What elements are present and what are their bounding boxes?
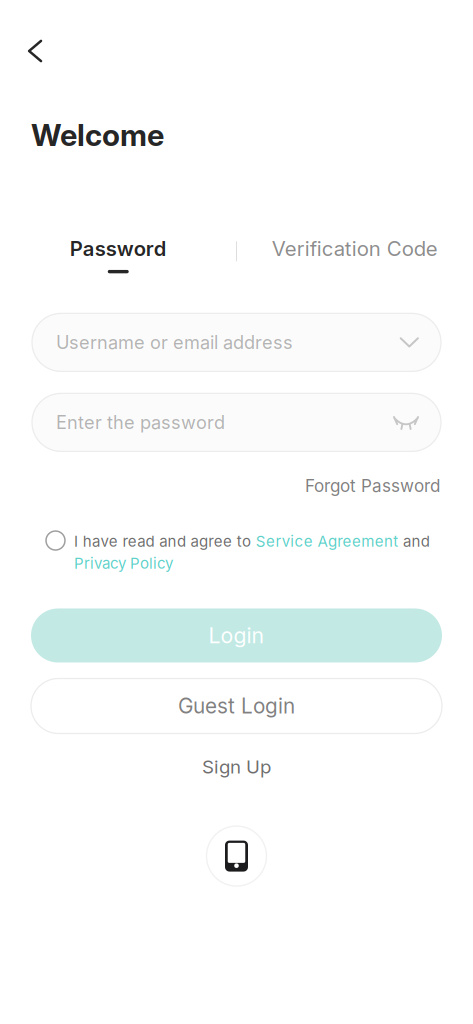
staticText: Password — [70, 236, 167, 261]
staticText: Sign Up — [202, 755, 271, 778]
button[interactable]: Login — [31, 608, 442, 662]
button[interactable]: Guest Login — [31, 678, 442, 733]
staticText: Welcome — [31, 117, 164, 153]
button[interactable]: Sign in with device — [206, 826, 266, 886]
staticText: I have read and agree to Service Agreeme… — [74, 532, 430, 550]
staticText: Enter the password — [56, 411, 225, 433]
staticText: Privacy Policy — [74, 554, 173, 572]
button[interactable]: Agree to the service agreement — [46, 531, 65, 550]
button[interactable]: Forgot Password — [305, 475, 440, 496]
staticText: Login — [208, 623, 264, 648]
staticText: Username or email address — [56, 331, 293, 353]
button[interactable]: Sign Up — [0, 755, 473, 778]
staticText: Guest Login — [178, 693, 295, 719]
staticText: Forgot Password — [305, 475, 440, 496]
staticText: Verification Code — [272, 236, 438, 261]
button[interactable]: Password — [0, 236, 236, 273]
button[interactable]: Back — [13, 29, 57, 73]
button[interactable]: Verification Code — [236, 236, 473, 273]
